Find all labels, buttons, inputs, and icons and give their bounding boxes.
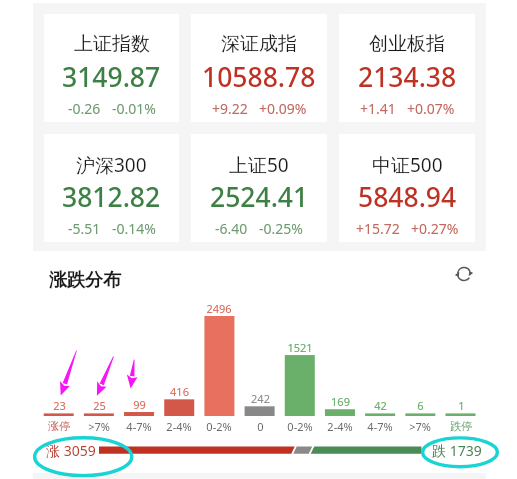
staticText: -0.01%	[112, 99, 156, 118]
staticText: +1.41	[360, 99, 396, 118]
button[interactable]: 上证50	[191, 134, 327, 242]
staticText: 2496	[206, 301, 232, 316]
button[interactable]: 创业板指	[339, 14, 475, 122]
staticText: -0.14%	[112, 219, 156, 238]
staticText: -6.40	[215, 219, 248, 238]
staticText: >7%	[409, 419, 431, 434]
staticText: 深证成指	[221, 32, 297, 56]
staticText: 25	[93, 398, 106, 413]
staticText: 中证500	[372, 152, 443, 178]
staticText: 4-7%	[126, 419, 152, 434]
staticText: +15.72	[356, 219, 400, 238]
staticText: 2134.38	[358, 59, 457, 95]
button[interactable]: 中证500	[339, 134, 475, 242]
button[interactable]: 深证成指	[191, 14, 327, 122]
staticText: -0.26	[68, 99, 101, 118]
staticText: 跌 1739	[432, 441, 482, 460]
staticText: 1521	[287, 340, 313, 355]
staticText: 上证指数	[74, 32, 150, 56]
staticText: 涨 3059	[46, 441, 96, 460]
staticText: +0.27%	[411, 219, 459, 238]
staticText: 沪深300	[76, 152, 147, 178]
staticText: 3812.82	[62, 179, 161, 215]
staticText: 416	[170, 384, 189, 399]
staticText: 2-4%	[327, 419, 353, 434]
staticText: -0.25%	[259, 219, 303, 238]
staticText: 169	[331, 394, 350, 409]
button[interactable]: 上证指数	[44, 14, 179, 122]
staticText: -5.51	[68, 219, 101, 238]
staticText: 23	[53, 398, 66, 413]
staticText: +0.09%	[259, 99, 307, 118]
staticText: 1	[458, 398, 465, 413]
staticText: 2-4%	[166, 419, 192, 434]
staticText: 0-2%	[206, 419, 232, 434]
staticText: 涨停	[48, 419, 70, 433]
staticText: 涨跌分布	[49, 269, 121, 292]
staticText: 2524.41	[210, 179, 309, 215]
staticText: 99	[133, 397, 146, 412]
staticText: >7%	[88, 419, 110, 434]
staticText: 10588.78	[202, 59, 316, 95]
staticText: 创业板指	[369, 32, 445, 56]
staticText: +0.07%	[407, 99, 455, 118]
staticText: 42	[374, 398, 387, 413]
button[interactable]: 跌 1739	[432, 441, 482, 460]
staticText: 242	[251, 391, 270, 406]
staticText: 0-2%	[287, 419, 313, 434]
button[interactable]: 涨跌分布	[49, 269, 121, 292]
staticText: 0	[257, 419, 264, 434]
staticText: 6	[417, 398, 424, 413]
staticText: 5848.94	[358, 179, 457, 215]
button[interactable]: 涨 3059	[46, 441, 96, 460]
button[interactable]: Refresh	[452, 262, 476, 286]
staticText: 4-7%	[367, 419, 393, 434]
staticText: 跌停	[450, 419, 472, 433]
button[interactable]: 沪深300	[44, 134, 179, 242]
staticText: +9.22	[212, 99, 248, 118]
staticText: 上证50	[229, 152, 289, 178]
staticText: 3149.87	[62, 59, 161, 95]
